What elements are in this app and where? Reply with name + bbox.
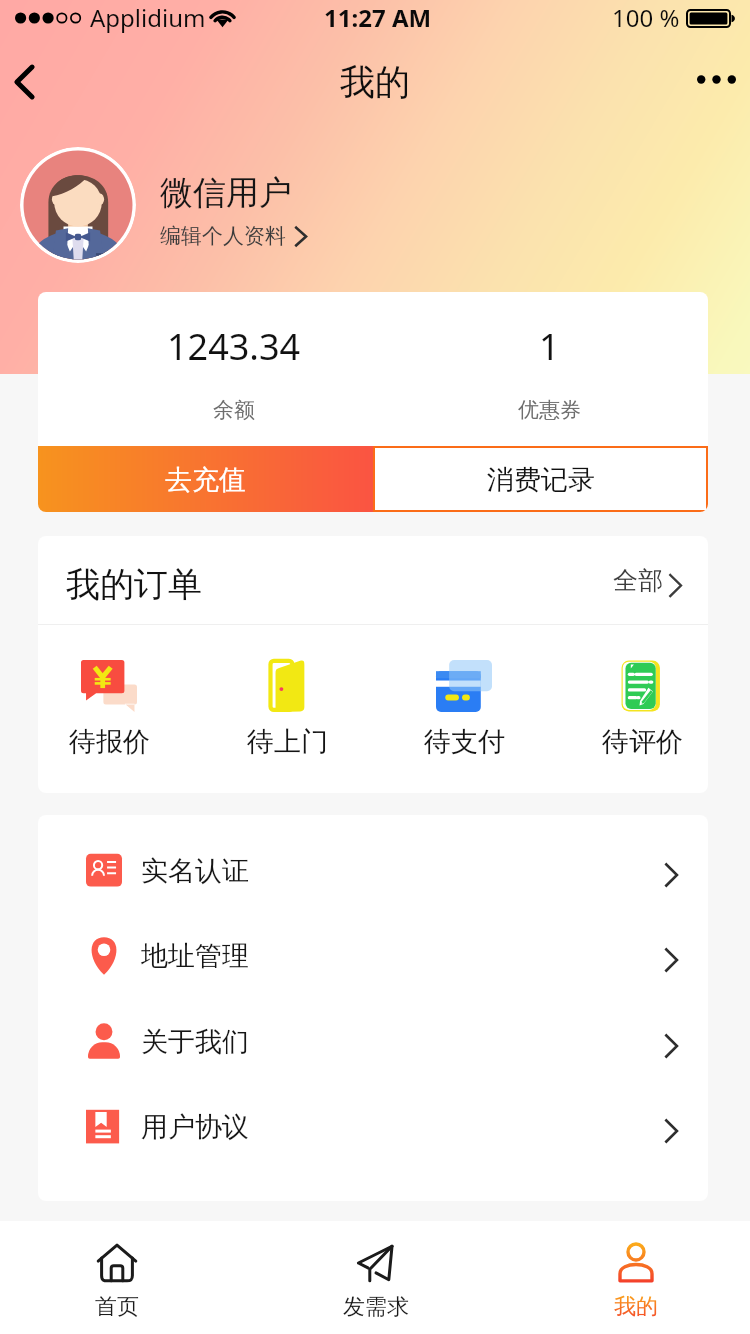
staticText: 我的 [614, 1293, 658, 1321]
staticText: 微信用户 [160, 172, 292, 214]
staticText: 消费记录 [487, 463, 595, 497]
staticText: 编辑个人资料 [160, 223, 286, 249]
button[interactable]: 实名认证 [38, 828, 708, 913]
button[interactable]: 1243.34 [74, 292, 394, 446]
button[interactable]: Avatar [20, 147, 136, 263]
button[interactable]: 发需求 [306, 1221, 446, 1334]
staticText: 待支付 [424, 725, 505, 759]
staticText: 待上门 [247, 725, 328, 759]
button[interactable]: 待报价 [39, 625, 179, 793]
button[interactable]: 全部 [613, 565, 682, 596]
button[interactable]: 去充值 [38, 446, 373, 512]
staticText: 100 % [612, 1, 680, 34]
button[interactable]: 用户协议 [38, 1084, 708, 1169]
staticText: 待报价 [69, 725, 150, 759]
button[interactable]: 关于我们 [38, 999, 708, 1084]
button[interactable]: 编辑个人资料 [160, 223, 307, 249]
button[interactable]: 1 [389, 292, 708, 446]
staticText: 待评价 [602, 725, 683, 759]
button[interactable]: 我的 [566, 1221, 706, 1334]
staticText: 11:27 AM [324, 1, 432, 34]
button[interactable]: 首页 [47, 1221, 187, 1334]
staticText: 优惠券 [518, 397, 581, 423]
staticText: 我的 [340, 60, 410, 104]
staticText: 地址管理 [141, 939, 249, 973]
button[interactable]: 待上门 [217, 625, 357, 793]
staticText: 1243.34 [167, 322, 301, 371]
staticText: 1 [539, 322, 560, 371]
staticText: 发需求 [343, 1293, 409, 1321]
staticText: 去充值 [165, 463, 246, 497]
staticText: 全部 [613, 565, 663, 596]
button[interactable]: 待评价 [572, 625, 708, 793]
staticText: 用户协议 [141, 1110, 249, 1144]
staticText: 余额 [213, 397, 255, 423]
button[interactable]: Back [0, 47, 54, 117]
button[interactable]: 待支付 [394, 625, 534, 793]
staticText: 实名认证 [141, 854, 249, 888]
staticText: 首页 [95, 1293, 139, 1321]
staticText: 关于我们 [141, 1025, 249, 1059]
button[interactable]: 消费记录 [373, 446, 708, 512]
staticText: 我的订单 [66, 563, 202, 606]
button[interactable]: More options [680, 47, 750, 117]
staticText: Applidium [90, 1, 206, 34]
button[interactable]: 地址管理 [38, 913, 708, 998]
